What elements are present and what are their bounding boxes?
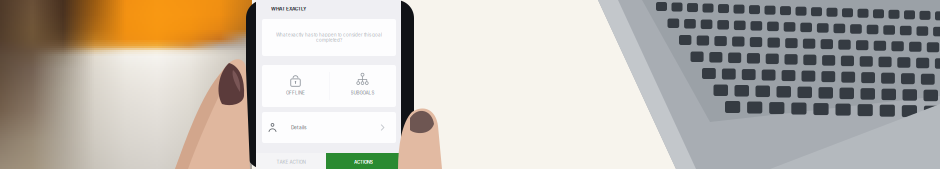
staticText: SUBGOALS xyxy=(350,90,374,95)
staticText: WHAT EXACTLY xyxy=(271,6,306,12)
staticText: OFFLINE xyxy=(286,90,305,95)
button[interactable]: Details xyxy=(262,112,396,143)
staticText: completed? xyxy=(316,37,342,43)
button[interactable]: ACTIONS xyxy=(326,153,401,169)
staticText: ACTIONS xyxy=(354,159,373,165)
staticText: TAKE ACTION xyxy=(276,159,305,165)
staticText: Details xyxy=(291,125,307,130)
button[interactable]: TAKE ACTION xyxy=(256,153,326,169)
staticText: What exactly has to happen to consider t… xyxy=(276,32,382,37)
button[interactable]: SUBGOALS xyxy=(329,65,396,107)
button[interactable]: OFFLINE xyxy=(262,65,329,107)
